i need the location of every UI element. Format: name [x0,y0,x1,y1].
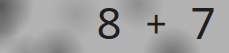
staticText: + [145,0,166,48]
staticText: 7 [190,0,215,51]
staticText: 8 [96,0,121,51]
